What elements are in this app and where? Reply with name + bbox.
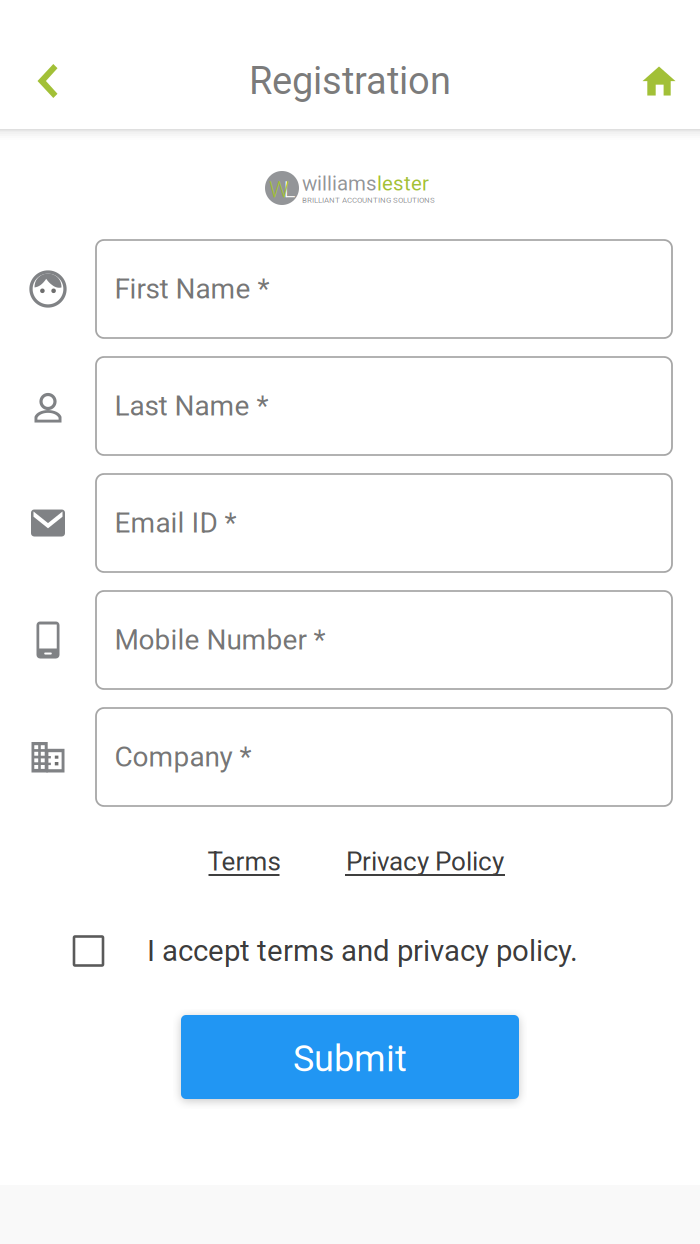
staticText: lester	[377, 171, 429, 195]
staticText: Registration	[249, 59, 451, 103]
staticText: Terms	[207, 846, 280, 877]
staticText: First Name *	[114, 273, 269, 305]
staticText: williams	[302, 171, 377, 195]
button[interactable]: Submit	[181, 1015, 519, 1099]
staticText: Email ID *	[114, 507, 236, 539]
button[interactable]: Terms	[176, 848, 312, 898]
button[interactable]: First Name *	[96, 240, 672, 338]
staticText: W	[269, 176, 289, 203]
button[interactable]: Home	[618, 33, 700, 129]
button[interactable]: Mobile Number *	[96, 591, 672, 689]
staticText: BRILLIANT ACCOUNTING SOLUTIONS	[302, 195, 435, 205]
staticText: L	[283, 176, 295, 203]
button[interactable]: Last Name *	[96, 357, 672, 455]
button[interactable]: Back	[0, 33, 95, 129]
staticText: Privacy Policy	[346, 846, 504, 877]
staticText: I accept terms and privacy policy.	[147, 934, 578, 968]
button[interactable]: Company *	[96, 708, 672, 806]
staticText: Last Name *	[114, 390, 268, 422]
button[interactable]: Privacy Policy	[312, 848, 538, 898]
staticText: Company *	[114, 741, 251, 773]
button[interactable]: Email ID *	[96, 474, 672, 572]
staticText: Mobile Number *	[114, 624, 325, 656]
button[interactable]: I accept terms and privacy policy.	[74, 926, 578, 976]
staticText: Submit	[293, 1038, 407, 1080]
